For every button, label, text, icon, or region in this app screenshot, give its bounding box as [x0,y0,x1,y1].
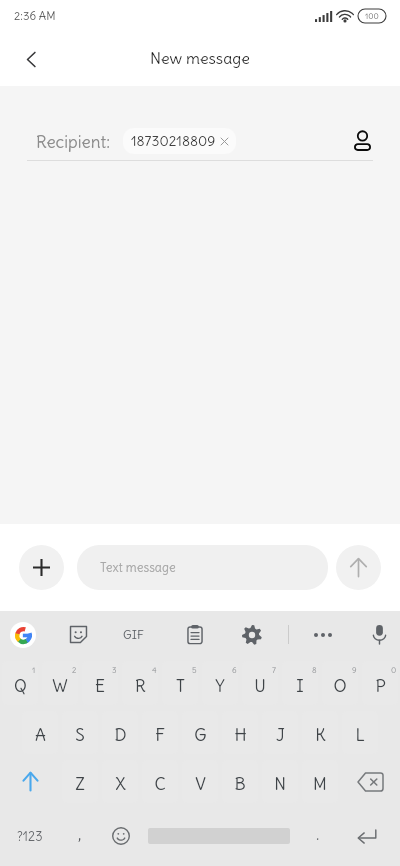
staticText: 0 [391,665,397,675]
staticText: L [355,724,365,745]
staticText: U [254,675,266,696]
staticText: 3 [112,665,117,675]
button[interactable]: Send [336,545,381,590]
staticText: 2:36 AM [14,9,56,23]
staticText: M [313,773,327,794]
staticText: J [276,724,285,745]
button[interactable]: K [300,708,340,757]
button[interactable]: M [300,757,340,806]
button[interactable]: B [220,757,260,806]
staticText: ?123 [17,828,43,844]
staticText: 4 [152,665,157,675]
button[interactable]: D [100,708,140,757]
button[interactable]: A [20,708,60,757]
button[interactable]: Z [60,757,100,806]
button[interactable]: Period [300,814,336,858]
button[interactable]: Q [0,658,40,708]
staticText: Q [14,675,27,696]
button[interactable]: Google [0,611,46,658]
button[interactable]: Y [200,658,240,708]
button[interactable]: Space [148,815,290,857]
button[interactable]: Comma [62,814,98,858]
button[interactable]: Shift [0,757,60,806]
staticText: H [234,724,247,745]
button[interactable]: More options [300,611,346,658]
staticText: C [154,773,166,794]
staticText: 7 [272,665,276,675]
staticText: Recipient: [36,131,111,152]
button[interactable]: N [260,757,300,806]
staticText: 5 [192,665,197,675]
button[interactable]: G [180,708,220,757]
button[interactable]: U [240,658,280,708]
button[interactable]: Backspace [340,757,400,806]
button[interactable]: J [260,708,300,757]
button[interactable]: C [140,757,180,806]
staticText: G [194,724,207,745]
staticText: 100 [365,11,379,21]
staticText: V [195,773,206,794]
button[interactable]: Emoji [103,814,139,858]
button[interactable]: 18730218809 [123,128,236,154]
staticText: D [114,724,127,745]
button[interactable]: F [140,708,180,757]
button[interactable]: O [320,658,360,708]
staticText: Text message [100,560,176,576]
button[interactable]: Enter [342,814,392,858]
staticText: 8 [312,665,317,675]
button[interactable]: Voice input [356,611,400,658]
staticText: T [176,675,185,696]
staticText: 18730218809 [131,132,216,150]
button[interactable]: GIF [110,611,156,658]
button[interactable]: Back [10,38,52,80]
button[interactable]: T [160,658,200,708]
staticText: A [35,724,46,745]
button[interactable]: E [80,658,120,708]
staticText: B [234,773,246,794]
staticText: F [155,724,165,745]
staticText: W [52,675,68,696]
button[interactable]: I [280,658,320,708]
staticText: X [115,773,126,794]
button[interactable]: S [60,708,100,757]
staticText: 1 [32,665,36,675]
staticText: , [78,824,82,844]
staticText: R [135,675,146,696]
staticText: E [95,675,105,696]
staticText: New message [150,48,250,68]
button[interactable]: Text message [77,545,328,590]
staticText: P [375,675,386,696]
staticText: K [315,724,326,745]
button[interactable]: P [360,658,400,708]
staticText: O [333,675,347,696]
staticText: S [75,724,85,745]
staticText: Z [75,773,85,794]
staticText: 6 [232,665,237,675]
staticText: Y [215,675,225,696]
button[interactable]: H [220,708,260,757]
button[interactable]: V [180,757,220,806]
button[interactable]: R [120,658,160,708]
staticText: . [316,824,320,844]
button[interactable]: Clipboard [172,611,218,658]
button[interactable]: L [340,708,380,757]
button[interactable]: Symbols [6,814,54,858]
staticText: GIF [123,627,144,642]
staticText: 2 [72,665,77,675]
button[interactable]: Settings [229,611,275,658]
button[interactable]: W [40,658,80,708]
staticText: 9 [352,665,357,675]
staticText: N [274,773,286,794]
button[interactable]: Stickers [55,611,101,658]
button[interactable]: Choose contact [342,121,382,161]
button[interactable]: Add attachment [19,545,64,590]
button[interactable]: X [100,757,140,806]
staticText: I [296,675,304,696]
